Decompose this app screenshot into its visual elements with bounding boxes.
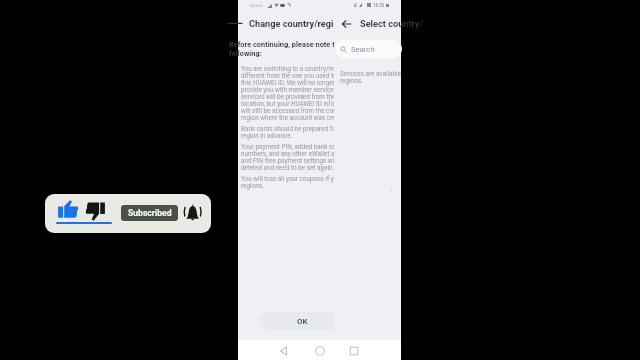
button[interactable]: Dislike [86,202,105,221]
staticText: Subscribed [128,208,172,218]
staticText: region where the account was created. [241,114,350,121]
staticText: regions. [241,182,264,189]
staticText: 16:32 [373,3,385,8]
staticText: Bank cards should be prepared for the ne… [241,125,362,132]
button[interactable]: Like [58,200,78,218]
staticText: Your payment PIN, added bank card [241,143,342,150]
staticText: Select country/region [360,18,427,29]
staticText: Mobile [250,3,263,8]
staticText: Before continuing, please note the [229,40,343,49]
button[interactable]: Recents [347,344,361,358]
button[interactable]: Notifications [184,204,201,221]
button[interactable]: Search [335,40,402,58]
staticText: Services are available in the following [340,70,407,77]
button[interactable]: Subscribed [121,205,178,221]
button[interactable]: Home [313,344,327,358]
staticText: Change country/region [249,18,344,29]
staticText: numbers, and any other eWallet account [241,150,354,157]
staticText: region in advance. [241,132,293,139]
staticText: OK [297,317,308,326]
staticText: You will lose all your coupons if you sw… [241,175,361,182]
button[interactable]: Back [338,16,354,32]
staticText: provide you with member services. The [241,86,351,93]
staticText: You are switching to a country/region [241,65,347,72]
button[interactable]: Back [277,344,291,358]
staticText: and PIN free payment settings will be [241,157,346,164]
staticText: different from the one you used to creat… [241,72,356,79]
staticText: L [391,186,395,193]
staticText: location, but your HUAWEI ID information [241,100,357,107]
button[interactable]: Back [228,16,242,30]
button[interactable]: OK [259,312,345,330]
staticText: services will be provided from the new [241,93,349,100]
staticText: deleted and need to be set again. [241,164,335,171]
staticText: Search [351,45,375,54]
staticText: regions. [340,77,363,84]
staticText: will still be accessed from the country … [241,107,355,114]
staticText: following: [229,49,262,58]
staticText: this HUAWEI ID. We will no longer [241,79,335,86]
